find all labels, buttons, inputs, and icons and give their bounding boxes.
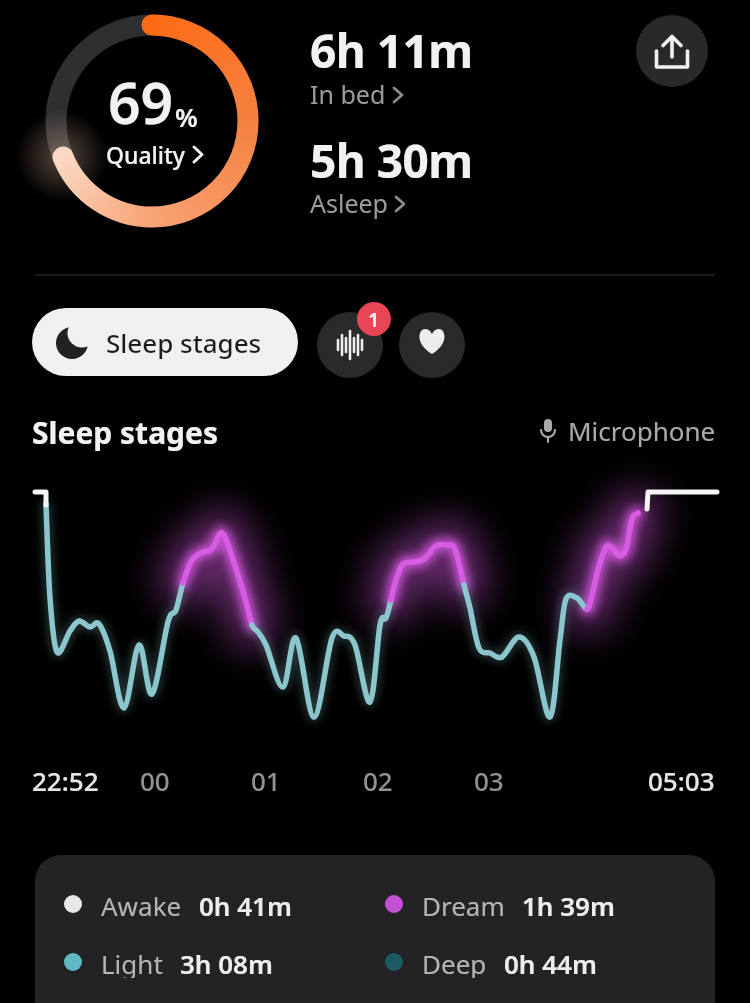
button[interactable]: Deep [385, 946, 597, 978]
button[interactable]: Sleep stages [32, 308, 298, 376]
staticText: 1h 39m [522, 888, 615, 920]
staticText: 05:03 [648, 763, 715, 798]
staticText: 5h 30m [310, 129, 473, 192]
staticText: Microphone [568, 413, 716, 448]
staticText: Dream [422, 888, 505, 920]
staticText: % [175, 99, 198, 134]
button[interactable]: In bed [310, 77, 402, 111]
staticText: 3h 08m [180, 946, 273, 978]
staticText: Awake [101, 888, 182, 920]
staticText: 69 [108, 63, 174, 141]
staticText: Sleep stages [106, 325, 262, 360]
button[interactable]: Light [64, 946, 273, 978]
staticText: 00 [140, 763, 170, 798]
staticText: 6h 11m [310, 19, 473, 82]
staticText: Light [101, 946, 163, 978]
staticText: 01 [251, 763, 281, 798]
button[interactable]: Quality [106, 139, 202, 170]
staticText: 02 [363, 763, 393, 798]
button[interactable] [636, 15, 708, 87]
staticText: Deep [422, 946, 487, 978]
staticText: Quality [106, 139, 185, 170]
staticText: 03 [474, 763, 504, 798]
button[interactable]: Dream [385, 888, 615, 920]
button[interactable]: Asleep [310, 186, 404, 220]
staticText: 1 [368, 306, 380, 333]
button[interactable]: Microphone [538, 413, 716, 448]
staticText: In bed [310, 77, 386, 111]
staticText: 22:52 [32, 763, 99, 798]
staticText: 0h 44m [504, 946, 597, 978]
button[interactable] [317, 312, 383, 378]
staticText: 0h 41m [199, 888, 292, 920]
staticText: Asleep [310, 186, 388, 220]
button[interactable]: Awake [64, 888, 292, 920]
staticText: Sleep stages [32, 412, 219, 453]
button[interactable] [399, 312, 465, 378]
